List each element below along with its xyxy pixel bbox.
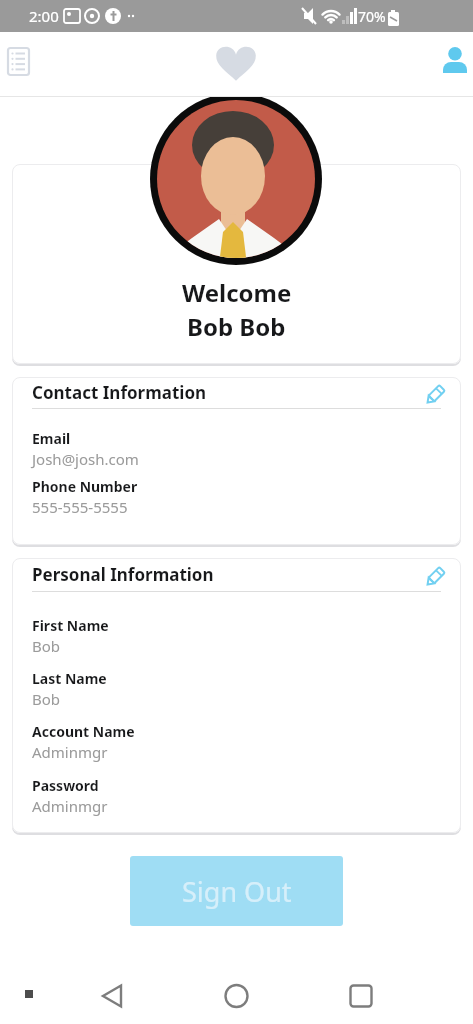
staticText: Josh@josh.com bbox=[32, 449, 139, 469]
staticText: Email bbox=[32, 429, 71, 448]
staticText: Contact Information bbox=[32, 381, 207, 404]
staticText: 70% bbox=[358, 7, 386, 26]
staticText: Bob Bob bbox=[187, 310, 286, 343]
button[interactable] bbox=[91, 976, 131, 1016]
button[interactable] bbox=[420, 562, 450, 592]
staticText: Personal Information bbox=[32, 563, 214, 586]
staticText: Bob bbox=[32, 636, 61, 656]
button[interactable] bbox=[3, 43, 35, 81]
staticText: Password bbox=[32, 776, 99, 795]
staticText: Welcome bbox=[182, 276, 292, 309]
button[interactable]: Sign Out bbox=[130, 856, 343, 926]
staticText: Account Name bbox=[32, 722, 135, 741]
staticText: First Name bbox=[32, 616, 109, 635]
button[interactable] bbox=[420, 380, 450, 410]
staticText: 2:00 bbox=[29, 6, 59, 26]
staticText: Sign Out bbox=[182, 873, 292, 910]
staticText: Bob bbox=[32, 689, 61, 709]
button[interactable] bbox=[341, 976, 381, 1016]
button[interactable] bbox=[216, 976, 256, 1016]
staticText: Adminmgr bbox=[32, 796, 108, 816]
button[interactable] bbox=[438, 42, 472, 82]
staticText: 555-555-5555 bbox=[32, 497, 128, 517]
staticText: Last Name bbox=[32, 669, 107, 688]
staticText: Phone Number bbox=[32, 477, 138, 496]
staticText: Adminmgr bbox=[32, 742, 108, 762]
